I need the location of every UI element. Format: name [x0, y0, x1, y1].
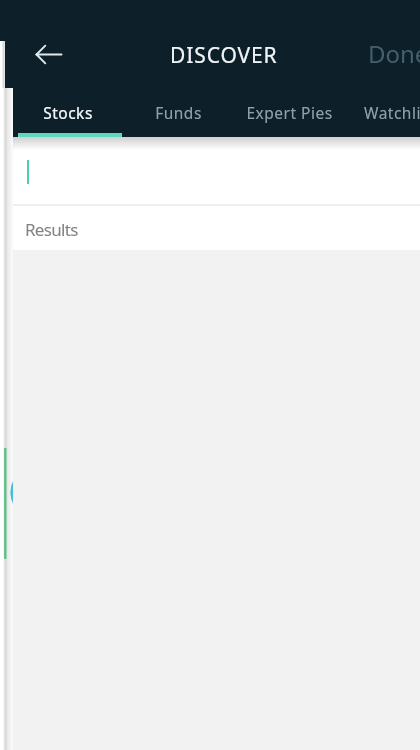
- staticText: Stocks: [43, 102, 93, 123]
- button[interactable]: Watchlist: [346, 88, 420, 137]
- staticText: DISCOVER: [170, 41, 278, 70]
- staticText: Expert Pies: [246, 102, 333, 123]
- button[interactable]: Done: [365, 41, 420, 88]
- staticText: Funds: [155, 102, 202, 123]
- staticText: Done: [368, 37, 420, 70]
- button[interactable]: Stocks: [13, 88, 124, 137]
- button[interactable]: Back: [25, 31, 73, 78]
- staticText: Watchlist: [364, 102, 420, 123]
- staticText: Results: [25, 218, 78, 241]
- button[interactable]: Funds: [124, 88, 235, 137]
- button[interactable]: Expert Pies: [235, 88, 346, 137]
